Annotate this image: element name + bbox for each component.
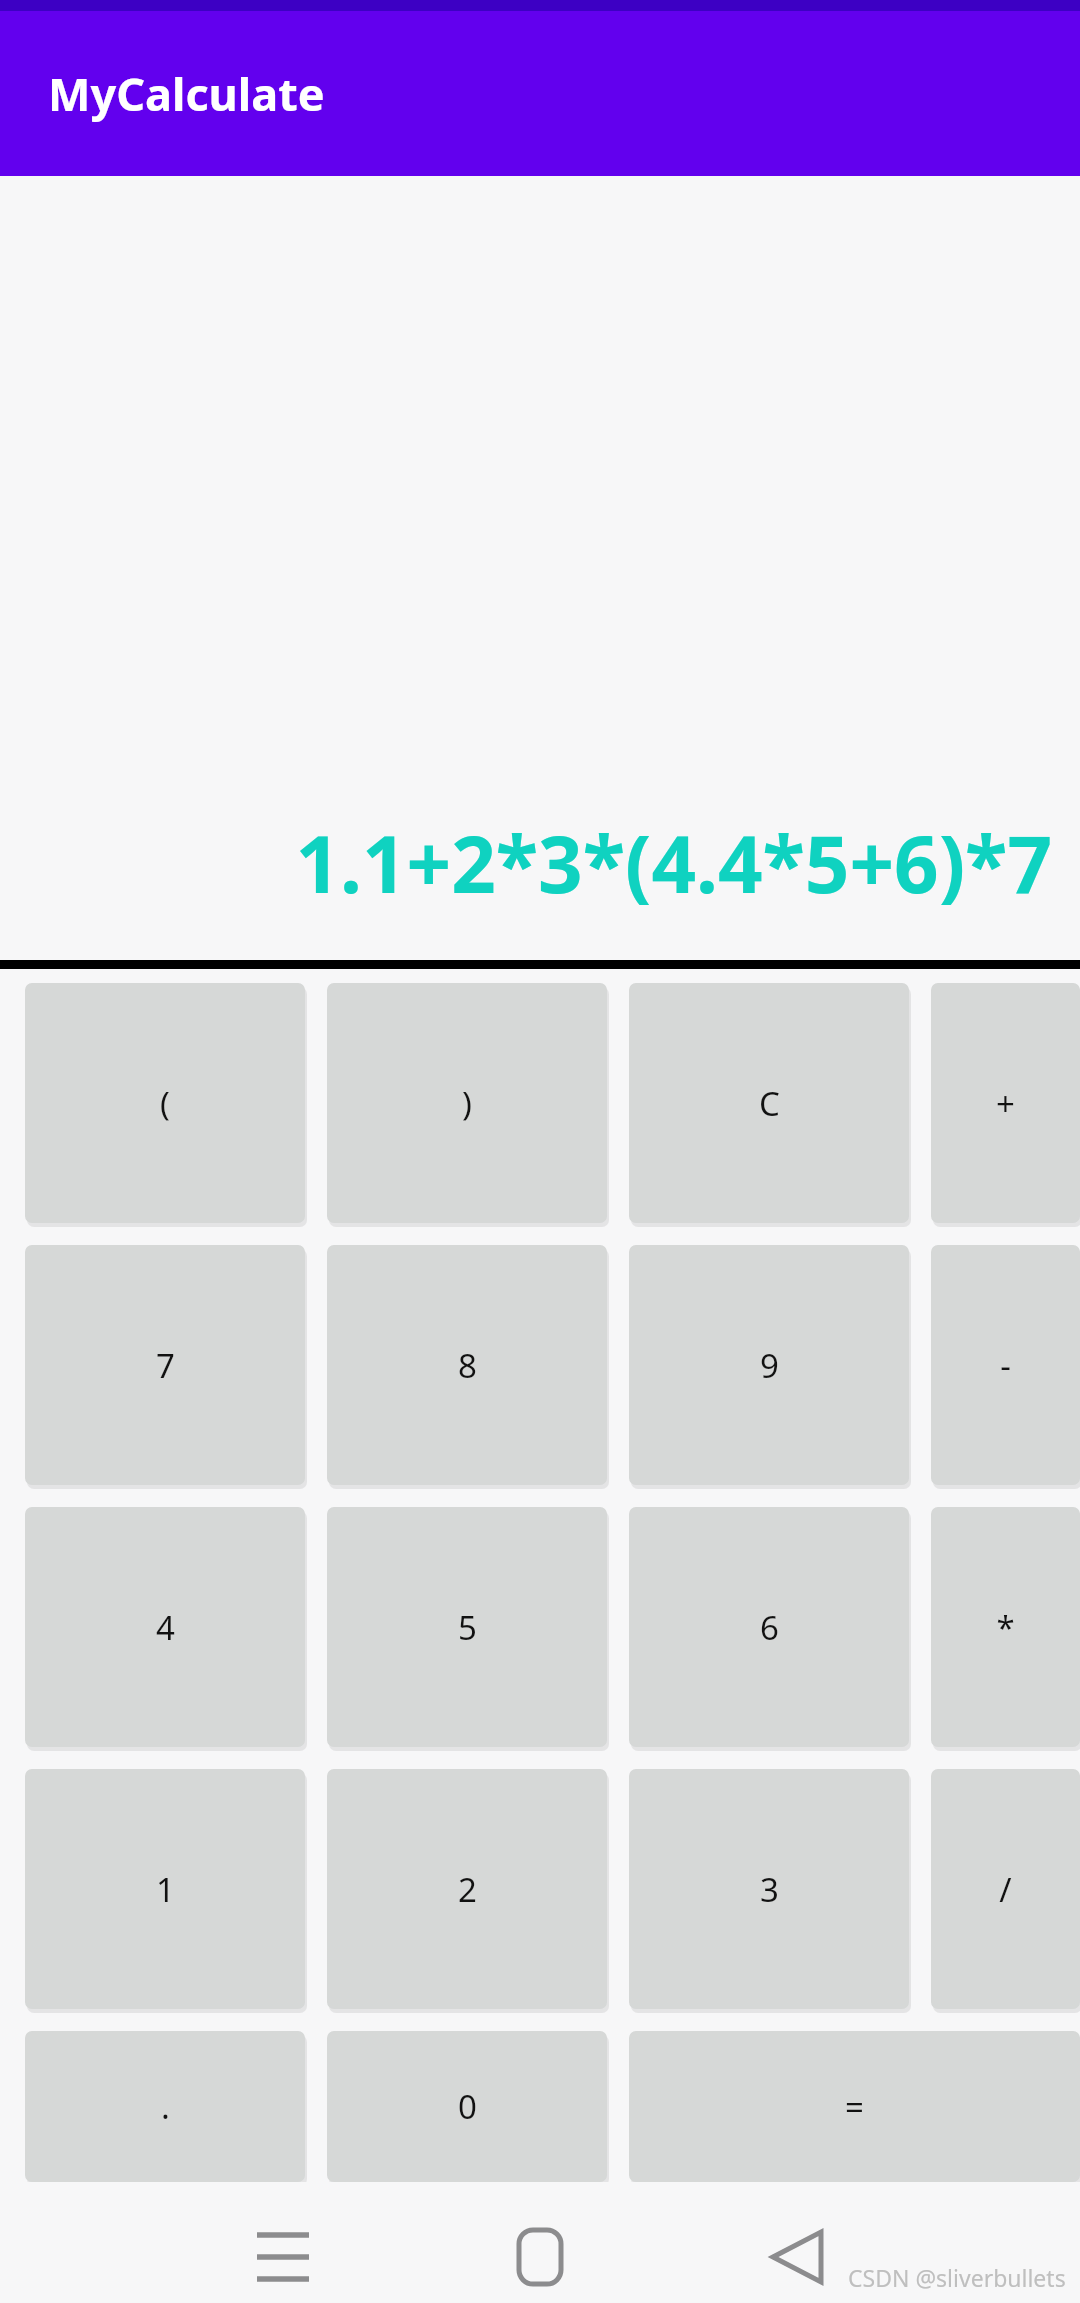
staticText: 1.1+2*3*(4.4*5+6)*7 [295,810,1052,916]
button[interactable]: - [931,1245,1080,1485]
staticText: 8 [458,1343,477,1388]
staticText: ) [462,1081,472,1126]
staticText: * [996,1605,1015,1650]
button[interactable]: C [629,983,909,1223]
staticText: ( [160,1081,170,1126]
button[interactable]: ( [25,983,305,1223]
button[interactable]: * [931,1507,1080,1747]
button[interactable]: 6 [629,1507,909,1747]
staticText: 6 [760,1605,779,1650]
button[interactable]: = [629,2031,1080,2182]
staticText: = [845,2084,864,2129]
button[interactable]: Home [485,2210,595,2303]
button[interactable]: 3 [629,1769,909,2009]
staticText: + [996,1081,1015,1126]
button[interactable]: 7 [25,1245,305,1485]
staticText: MyCalculate [48,63,325,124]
staticText: 3 [760,1867,779,1912]
staticText: 9 [760,1343,779,1388]
staticText: C [759,1081,780,1126]
button[interactable]: / [931,1769,1080,2009]
button[interactable]: 9 [629,1245,909,1485]
staticText: / [999,1867,1012,1912]
staticText: . [161,2084,170,2129]
button[interactable]: 0 [327,2031,607,2182]
button[interactable]: . [25,2031,305,2182]
staticText: - [1000,1343,1011,1388]
button[interactable]: + [931,983,1080,1223]
staticText: 4 [156,1605,175,1650]
button[interactable]: 5 [327,1507,607,1747]
button[interactable]: 2 [327,1769,607,2009]
button[interactable]: ) [327,983,607,1223]
staticText: 7 [156,1343,175,1388]
button[interactable]: Recent apps [228,2210,338,2303]
staticText: 1 [156,1867,175,1912]
staticText: 0 [458,2084,477,2129]
staticText: 5 [458,1605,477,1650]
button[interactable]: 4 [25,1507,305,1747]
button[interactable]: 8 [327,1245,607,1485]
staticText: CSDN @sliverbullets [848,2262,1066,2293]
button[interactable]: Back [742,2210,852,2303]
button[interactable]: 1 [25,1769,305,2009]
staticText: 2 [458,1867,477,1912]
